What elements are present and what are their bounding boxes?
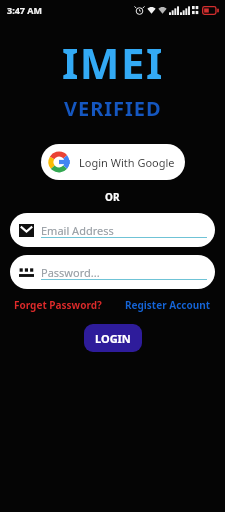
staticText: Email Address xyxy=(41,223,114,238)
staticText: Password... xyxy=(41,265,100,280)
staticText: VERIFIED xyxy=(64,95,162,122)
staticText: Forget Password? xyxy=(14,298,102,312)
staticText: OR xyxy=(105,190,120,204)
button[interactable]: Login With Google xyxy=(41,144,185,180)
staticText: IMEI xyxy=(62,34,164,91)
staticText: 3:47 AM xyxy=(7,4,43,16)
button[interactable]: Forget Password? xyxy=(14,296,102,314)
button[interactable]: Password... xyxy=(10,255,215,289)
staticText: LOGIN xyxy=(95,331,131,346)
button[interactable]: Email Address xyxy=(10,213,215,247)
button[interactable]: LOGIN xyxy=(84,324,142,352)
staticText: Login With Google xyxy=(79,155,175,170)
button[interactable]: Register Account xyxy=(125,296,211,314)
staticText: Register Account xyxy=(125,298,211,312)
